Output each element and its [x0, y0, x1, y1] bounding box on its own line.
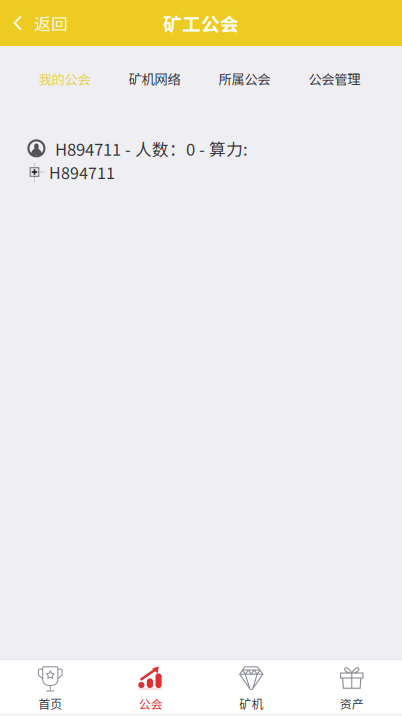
staticText: 所属公会	[218, 69, 270, 88]
button[interactable]: H894711	[27, 160, 386, 184]
button[interactable]: 公会管理	[289, 58, 379, 99]
button[interactable]: 矿机	[201, 656, 301, 716]
button[interactable]: 我的公会	[19, 58, 109, 99]
staticText: 我的公会	[38, 69, 90, 88]
button[interactable]: 资产	[301, 656, 402, 716]
button[interactable]: 矿机网络	[109, 58, 199, 99]
staticText: 返回	[34, 11, 68, 35]
staticText: 公会	[139, 695, 163, 712]
staticText: 矿工公会	[163, 9, 239, 36]
button[interactable]: 首页	[0, 656, 100, 716]
staticText: 矿机网络	[128, 69, 180, 88]
staticText: 公会管理	[308, 69, 360, 88]
staticText: 资产	[340, 695, 364, 712]
staticText: 首页	[38, 695, 62, 712]
button[interactable]: H894711 - 人数：0 - 算力:	[27, 136, 386, 160]
staticText: 矿机	[239, 695, 263, 712]
button[interactable]: 返回	[0, 0, 80, 46]
button[interactable]: 所属公会	[199, 58, 289, 99]
button[interactable]: 公会	[100, 656, 201, 716]
staticText: H894711	[49, 160, 115, 184]
staticText: H894711 - 人数：0 - 算力:	[55, 136, 248, 160]
